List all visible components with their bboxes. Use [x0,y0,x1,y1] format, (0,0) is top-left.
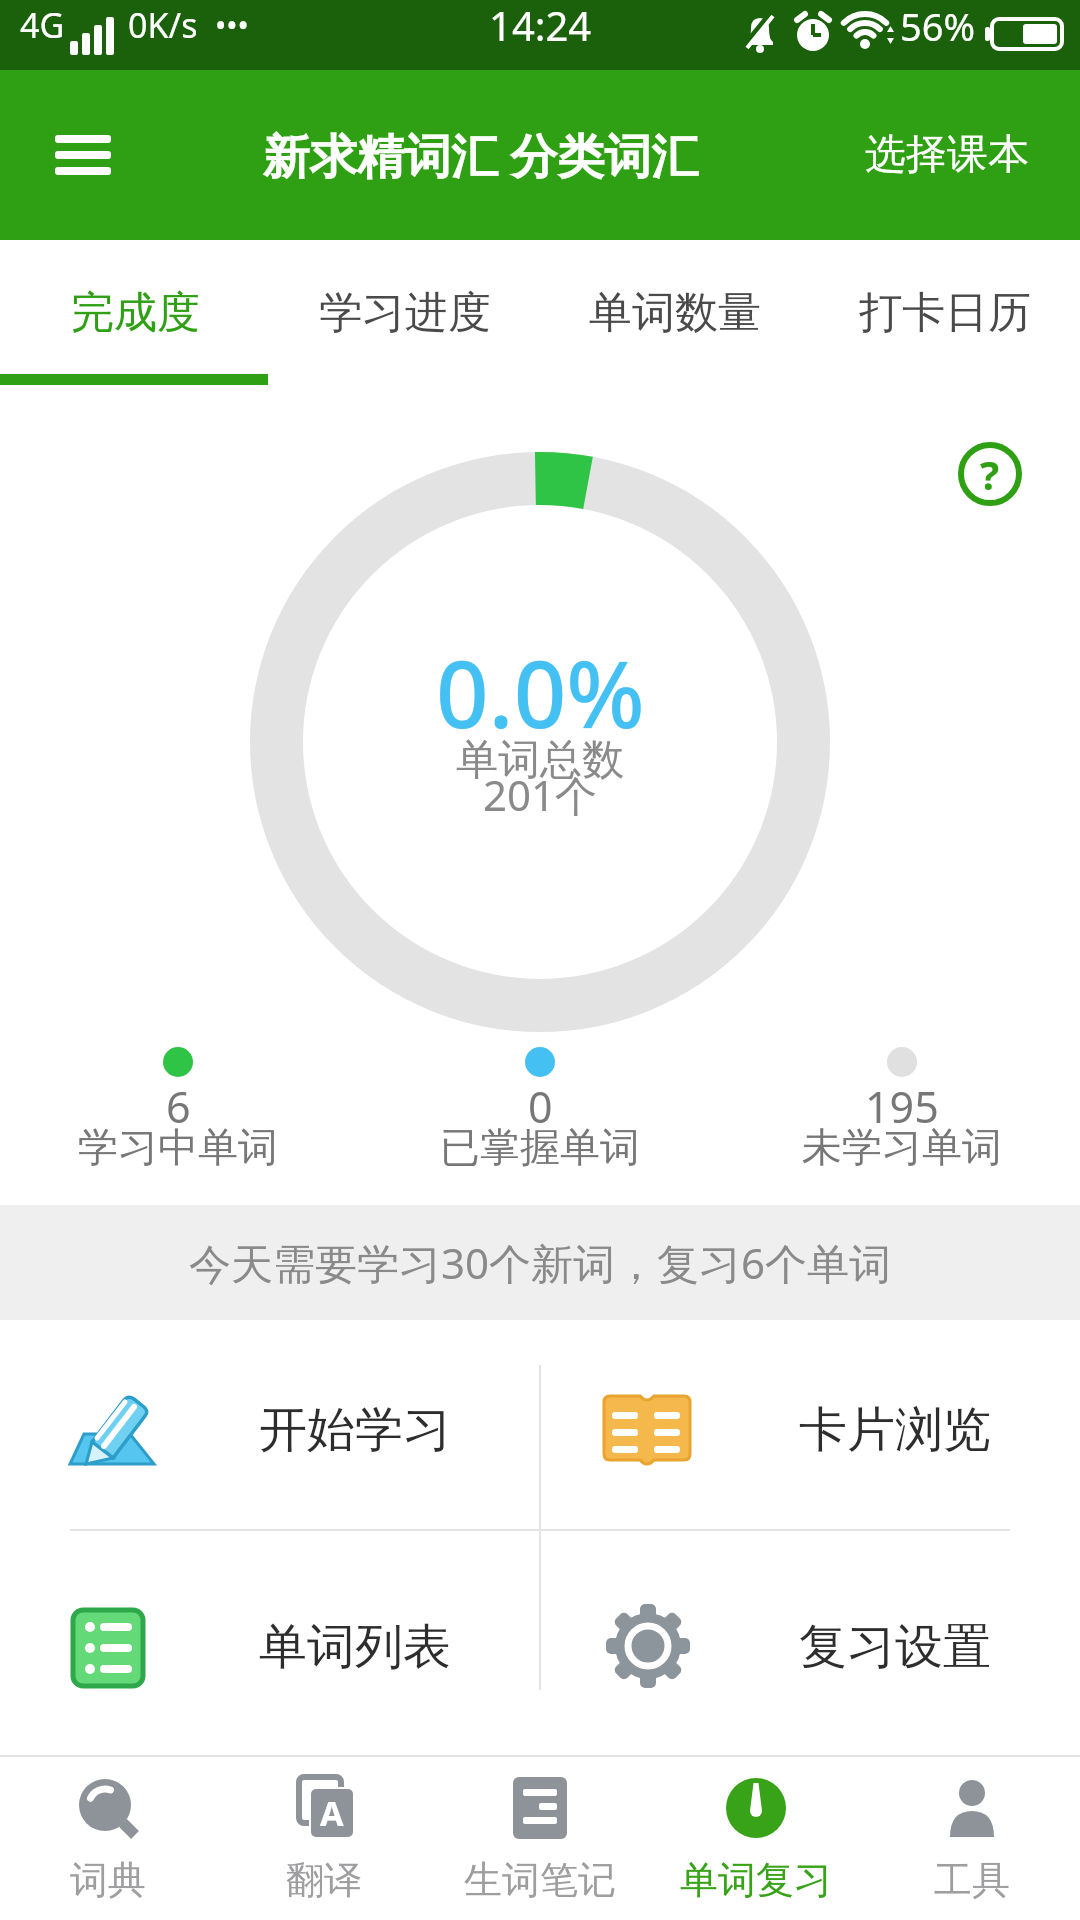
button[interactable]: 学习进度 [270,240,540,385]
staticText: 单词复习 [680,1856,832,1904]
staticText: 选择课本 [865,129,1029,181]
button[interactable] [540,1530,1080,1745]
staticText: ••• [215,5,249,46]
button[interactable]: 选择课本 [842,115,1052,195]
button[interactable]: 打卡日历 [810,240,1080,385]
staticText: 单词列表 [259,1617,451,1677]
staticText: 单词数量 [589,286,761,340]
staticText: 生词笔记 [464,1856,616,1904]
staticText: 已掌握单词 [440,1122,640,1172]
staticText: A [320,1790,344,1836]
staticText: 学习进度 [319,286,491,340]
button[interactable] [0,1530,540,1745]
staticText: ? [980,447,1000,501]
staticText: 工具 [934,1856,1010,1904]
button[interactable]: 生词笔记 [432,1755,648,1920]
button[interactable]: 完成度 [0,240,270,385]
staticText: 学习中单词 [78,1122,278,1172]
staticText: 新求精词汇 分类词汇 [263,123,699,187]
staticText: 开始学习 [259,1400,451,1460]
staticText: 翻译 [286,1856,362,1904]
button[interactable]: 工具 [864,1755,1080,1920]
staticText: 复习设置 [799,1617,991,1677]
staticText: 56% [900,0,976,52]
staticText: 4G [20,2,65,48]
staticText: 词典 [70,1856,146,1904]
staticText: 完成度 [71,286,200,340]
button[interactable]: 词典 [0,1755,216,1920]
staticText: 0.0% [436,630,645,755]
staticText: 打卡日历 [859,286,1031,340]
staticText: 195 [865,1077,939,1136]
staticText: 未学习单词 [802,1122,1002,1172]
staticText: 6 [166,1077,191,1136]
staticText: 201个 [483,766,598,823]
staticText: 单词总数 [456,734,624,787]
button[interactable] [540,1320,1080,1530]
button[interactable]: 单词数量 [540,240,810,385]
staticText: 卡片浏览 [799,1400,991,1460]
button[interactable]: 单词复习 [648,1755,864,1920]
button[interactable] [0,1320,540,1530]
staticText: 今天需要学习30个新词，复习6个单词 [189,1234,892,1291]
staticText: 0K/s [128,2,198,48]
staticText: 0 [528,1077,553,1136]
button[interactable]: ? [950,434,1030,514]
button[interactable] [35,115,130,195]
staticText: 14:24 [489,0,592,52]
button[interactable]: A [216,1755,432,1920]
